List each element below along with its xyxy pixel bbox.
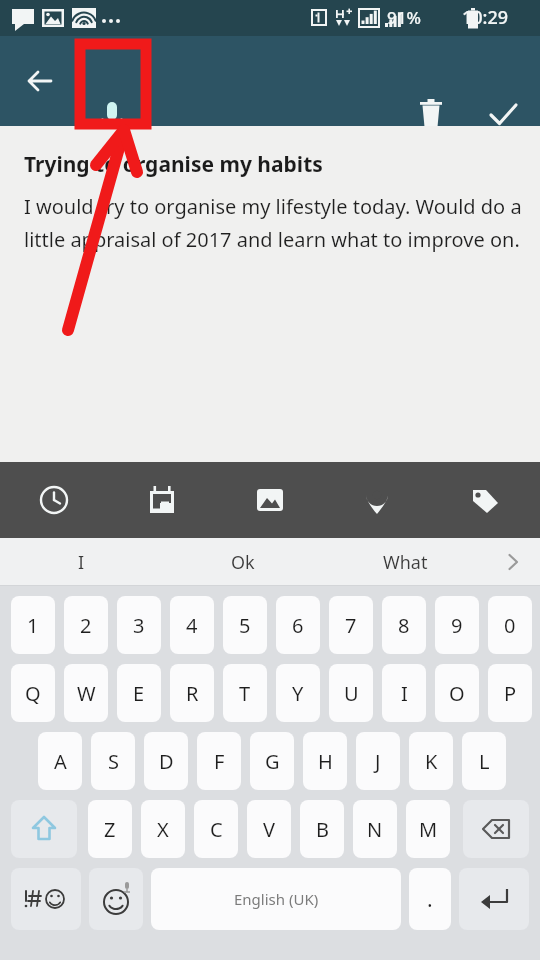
button[interactable]: Reminder [27, 476, 81, 524]
staticText: 9 [451, 612, 463, 639]
staticText: D [159, 748, 174, 775]
button[interactable]: K [409, 732, 453, 790]
button[interactable]: What [324, 538, 486, 586]
button[interactable]: 5 [223, 596, 267, 654]
staticText: K [425, 748, 438, 775]
staticText: F [214, 748, 225, 775]
button[interactable]: B [300, 800, 344, 858]
staticText: Y [292, 680, 304, 707]
staticText: 5 [239, 612, 251, 639]
button[interactable]: Z [88, 800, 132, 858]
button[interactable]: More suggestions [486, 538, 540, 586]
staticText: R [186, 680, 199, 707]
staticText: I would try to organise my lifestyle tod… [24, 193, 522, 253]
staticText: W [77, 680, 96, 707]
button[interactable]: I [382, 664, 426, 722]
button[interactable]: O [435, 664, 479, 722]
staticText: C [210, 816, 223, 843]
button[interactable]: Image [243, 476, 297, 524]
staticText: 6 [292, 612, 304, 639]
button[interactable]: U [329, 664, 373, 722]
staticText: O [449, 680, 465, 707]
button[interactable]: P [488, 664, 532, 722]
staticText: G [265, 748, 280, 775]
staticText: 8 [398, 612, 410, 639]
staticText: U [344, 680, 359, 707]
button[interactable]: L [462, 732, 506, 790]
staticText: P [504, 680, 517, 707]
staticText: I [78, 550, 85, 575]
staticText: Q [25, 680, 41, 707]
staticText: S [108, 748, 119, 775]
staticText: M [419, 816, 438, 843]
button[interactable]: 8 [382, 596, 426, 654]
staticText: 91% [364, 6, 444, 29]
button[interactable]: Voice input [88, 92, 136, 140]
button[interactable]: 6 [276, 596, 320, 654]
button[interactable]: A [38, 732, 82, 790]
button[interactable]: V [247, 800, 291, 858]
button[interactable]: C [194, 800, 238, 858]
button[interactable]: Date [135, 476, 189, 524]
staticText: L [479, 748, 490, 775]
staticText: X [157, 816, 169, 843]
button[interactable]: Symbols [11, 868, 81, 930]
button[interactable]: X [141, 800, 185, 858]
button[interactable]: . [409, 868, 451, 930]
button[interactable]: Trying to organise my habits [24, 150, 522, 462]
button[interactable]: J [356, 732, 400, 790]
button[interactable]: Y [276, 664, 320, 722]
staticText: 4 [186, 612, 198, 639]
button[interactable]: M [406, 800, 450, 858]
button[interactable]: English (UK) [151, 868, 401, 930]
button[interactable]: 3 [117, 596, 161, 654]
staticText: B [316, 816, 329, 843]
button[interactable]: 0 [488, 596, 532, 654]
staticText: A [54, 748, 67, 775]
staticText: What [383, 550, 428, 575]
button[interactable]: D [144, 732, 188, 790]
staticText: Z [104, 816, 116, 843]
staticText: English (UK) [234, 889, 319, 909]
staticText: . [427, 885, 433, 914]
staticText: 7 [345, 612, 357, 639]
button[interactable]: Delete [407, 90, 455, 138]
button[interactable]: 2 [64, 596, 108, 654]
button[interactable]: W [64, 664, 108, 722]
button[interactable]: R [170, 664, 214, 722]
staticText: I [401, 680, 408, 707]
staticText: T [239, 680, 251, 707]
button[interactable]: Backspace [463, 800, 529, 858]
button[interactable]: H [303, 732, 347, 790]
staticText: H [318, 748, 333, 775]
button[interactable]: Location [350, 476, 404, 524]
button[interactable]: 9 [435, 596, 479, 654]
button[interactable]: Save [479, 90, 527, 138]
button[interactable]: I [0, 538, 162, 586]
button[interactable]: Ok [162, 538, 324, 586]
staticText: 2 [80, 612, 92, 639]
button[interactable]: Q [11, 664, 55, 722]
button[interactable]: 1 [11, 596, 55, 654]
button[interactable]: Shift [11, 800, 77, 858]
button[interactable]: Tag [458, 476, 512, 524]
button[interactable]: 7 [329, 596, 373, 654]
staticText: Trying to organise my habits [24, 150, 323, 179]
button[interactable]: G [250, 732, 294, 790]
button[interactable]: E [117, 664, 161, 722]
button[interactable]: Back [16, 57, 64, 105]
staticText: N [367, 816, 383, 843]
button[interactable]: 4 [170, 596, 214, 654]
button[interactable]: F [197, 732, 241, 790]
button[interactable]: T [223, 664, 267, 722]
staticText: 0 [504, 612, 516, 639]
staticText: V [263, 816, 275, 843]
button[interactable]: N [353, 800, 397, 858]
staticText: 3 [133, 612, 145, 639]
staticText: E [133, 680, 145, 707]
staticText: 10:29 [445, 5, 525, 30]
button[interactable]: Enter [459, 868, 529, 930]
button[interactable]: Emoji [89, 868, 143, 930]
button[interactable]: S [91, 732, 135, 790]
staticText: 1 [27, 612, 39, 639]
